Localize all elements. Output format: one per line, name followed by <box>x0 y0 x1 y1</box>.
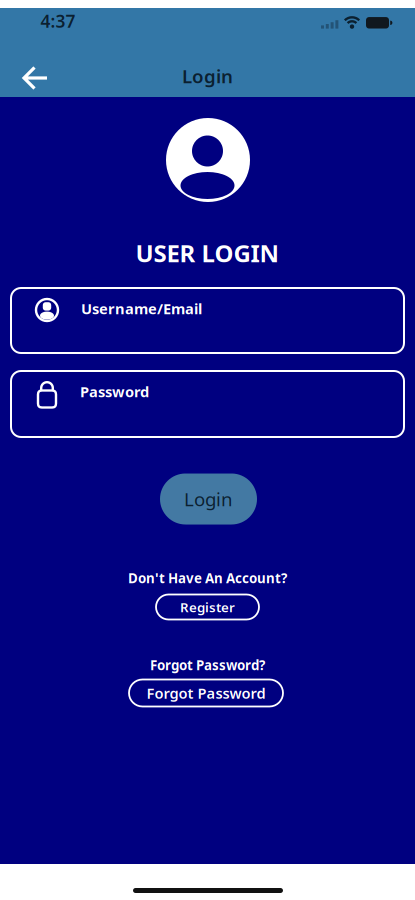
button[interactable]: Username/Email <box>11 288 404 353</box>
staticText: 4:37 <box>40 9 75 32</box>
staticText: Forgot Password <box>146 683 265 703</box>
staticText: Username/Email <box>81 299 202 318</box>
staticText: USER LOGIN <box>135 237 279 269</box>
staticText: Login <box>182 64 233 88</box>
button[interactable]: Register <box>156 594 259 619</box>
button[interactable]: Login <box>160 473 257 524</box>
button[interactable]: Forgot Password <box>129 679 283 706</box>
button[interactable] <box>13 64 57 92</box>
staticText: Register <box>180 598 235 616</box>
staticText: Login <box>184 487 233 511</box>
staticText: Forgot Password? <box>150 656 265 674</box>
staticText: Password <box>80 382 149 401</box>
button[interactable]: Password <box>11 371 404 437</box>
staticText: Don't Have An Account? <box>128 569 287 587</box>
